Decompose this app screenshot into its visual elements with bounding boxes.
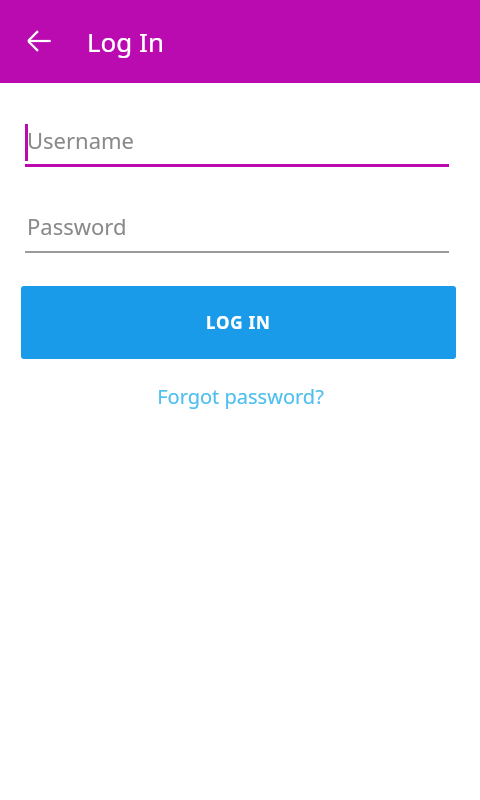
button[interactable]: Forgot password? [0,377,480,415]
staticText: Log In [87,24,164,59]
button[interactable]: Back [15,17,63,65]
button[interactable]: Password [25,211,449,253]
staticText: LOG IN [206,311,271,334]
staticText: Forgot password? [157,383,324,410]
button[interactable]: LOG IN [21,286,456,359]
staticText: Password [27,211,127,241]
button[interactable]: Username [25,123,449,167]
staticText: Username [27,125,135,155]
